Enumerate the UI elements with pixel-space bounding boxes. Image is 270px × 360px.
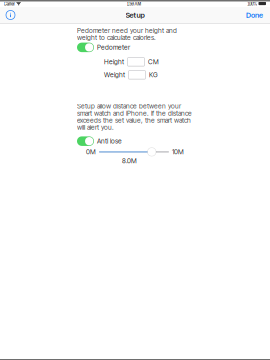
staticText: 100% [247,0,257,7]
staticText: Anti lose [97,137,122,145]
button[interactable]: Done [240,8,270,22]
staticText: KG [149,71,158,79]
staticText: Height [104,58,124,66]
staticText: Pedometer [97,43,130,51]
button[interactable]: Info [0,8,21,22]
staticText: CM [148,58,159,66]
staticText: Pedometer need your height and weight to… [77,26,177,42]
staticText: 8.0M [122,157,137,165]
staticText: Carrier [3,0,14,7]
staticText: Setup allow distance between your smart … [77,102,192,131]
button[interactable]: Pedometer [77,43,94,52]
staticText: 0M [86,148,96,156]
staticText: Setup [125,11,144,19]
staticText: Weight [104,71,125,79]
staticText: Done [246,11,263,19]
staticText: 1:59 AM [127,0,142,7]
button[interactable]: Anti lose [77,136,94,146]
staticText: 10M [172,148,184,156]
